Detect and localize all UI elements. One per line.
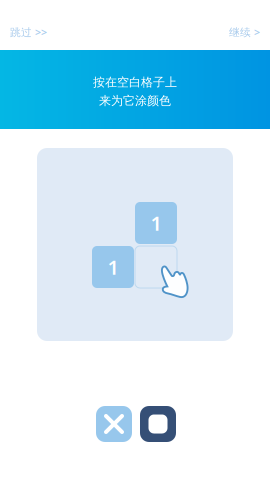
staticText: 跳过 >> — [10, 25, 47, 39]
staticText: 按在空白格子上 — [93, 75, 177, 89]
staticText: 来为它涂颜色 — [99, 93, 171, 108]
button[interactable]: Clear — [96, 406, 132, 442]
staticText: 1 — [150, 210, 161, 236]
button[interactable]: Fill — [140, 406, 176, 442]
button[interactable]: 跳过 >> — [0, 19, 57, 45]
button[interactable]: 继续 > — [219, 19, 270, 45]
staticText: 1 — [107, 254, 118, 280]
staticText: 继续 > — [229, 25, 260, 39]
